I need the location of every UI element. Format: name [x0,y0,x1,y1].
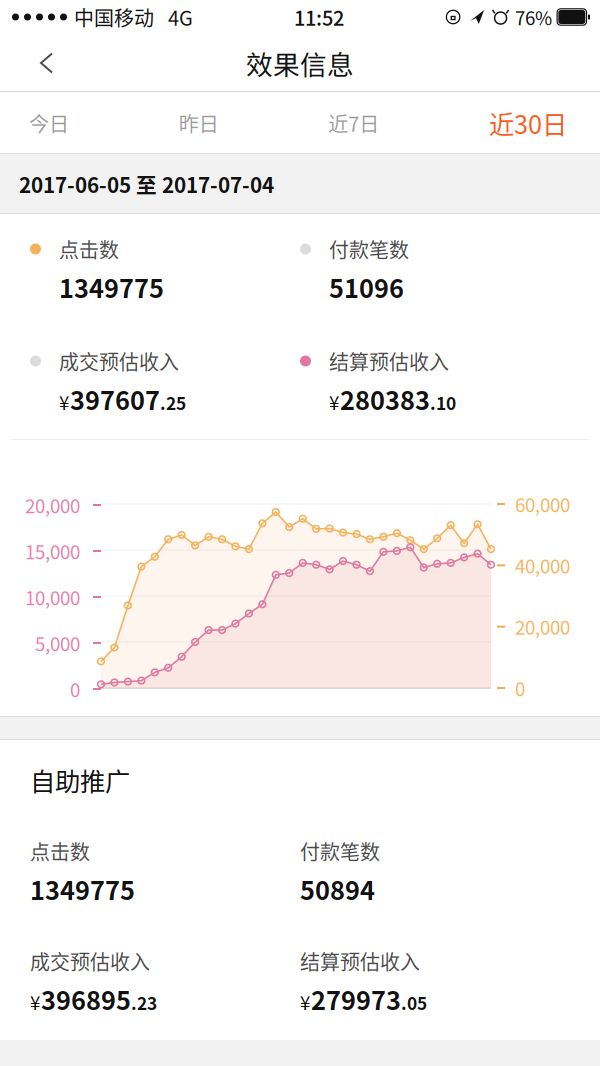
staticText: 成交预估收入 [30,946,150,975]
staticText: 4G [168,2,193,31]
staticText: .25 [160,390,186,415]
staticText: ¥ [300,988,310,1015]
staticText: 279973 [311,981,401,1017]
staticText: 0 [515,674,525,701]
staticText: 近30日 [489,105,567,141]
staticText: 60,000 [515,490,570,517]
staticText: ¥ [30,988,40,1015]
staticText: 397607 [70,381,160,417]
staticText: 15,000 [25,537,80,564]
staticText: ¥ [59,388,69,415]
staticText: 2017-06-05 至 2017-07-04 [19,169,274,199]
button[interactable]: 今日 [29,92,69,154]
staticText: 自助推广 [30,762,130,798]
staticText: 点击数 [30,836,90,865]
staticText: 近7日 [328,108,379,137]
staticText: .10 [430,390,456,415]
staticText: 昨日 [179,108,219,137]
staticText: 50894 [300,871,375,907]
button[interactable]: Back [0,34,76,91]
staticText: 结算预估收入 [329,346,449,375]
staticText: 付款笔数 [300,836,380,865]
staticText: 51096 [329,269,404,305]
staticText: 20,000 [515,613,570,640]
staticText: 今日 [29,108,69,137]
button[interactable]: 近7日 [328,92,379,154]
button[interactable]: 近30日 [489,92,567,154]
staticText: 11:52 [294,2,344,31]
staticText: 10,000 [25,583,80,610]
staticText: 中国移动 [74,2,154,31]
staticText: 1349775 [59,269,164,305]
staticText: 效果信息 [246,44,354,82]
staticText: 结算预估收入 [300,946,420,975]
staticText: 5,000 [35,629,80,656]
staticText: 点击数 [59,234,119,263]
staticText: .23 [131,990,157,1015]
staticText: 0 [70,675,80,702]
staticText: ¥ [329,388,339,415]
staticText: 1349775 [30,871,135,907]
staticText: .05 [401,990,427,1015]
staticText: 成交预估收入 [59,346,179,375]
staticText: 396895 [41,981,131,1017]
staticText: 付款笔数 [329,234,409,263]
staticText: 20,000 [25,491,80,518]
staticText: 280383 [340,381,430,417]
button[interactable]: 昨日 [179,92,219,154]
staticText: 40,000 [515,552,570,579]
staticText: 76% [515,3,552,30]
